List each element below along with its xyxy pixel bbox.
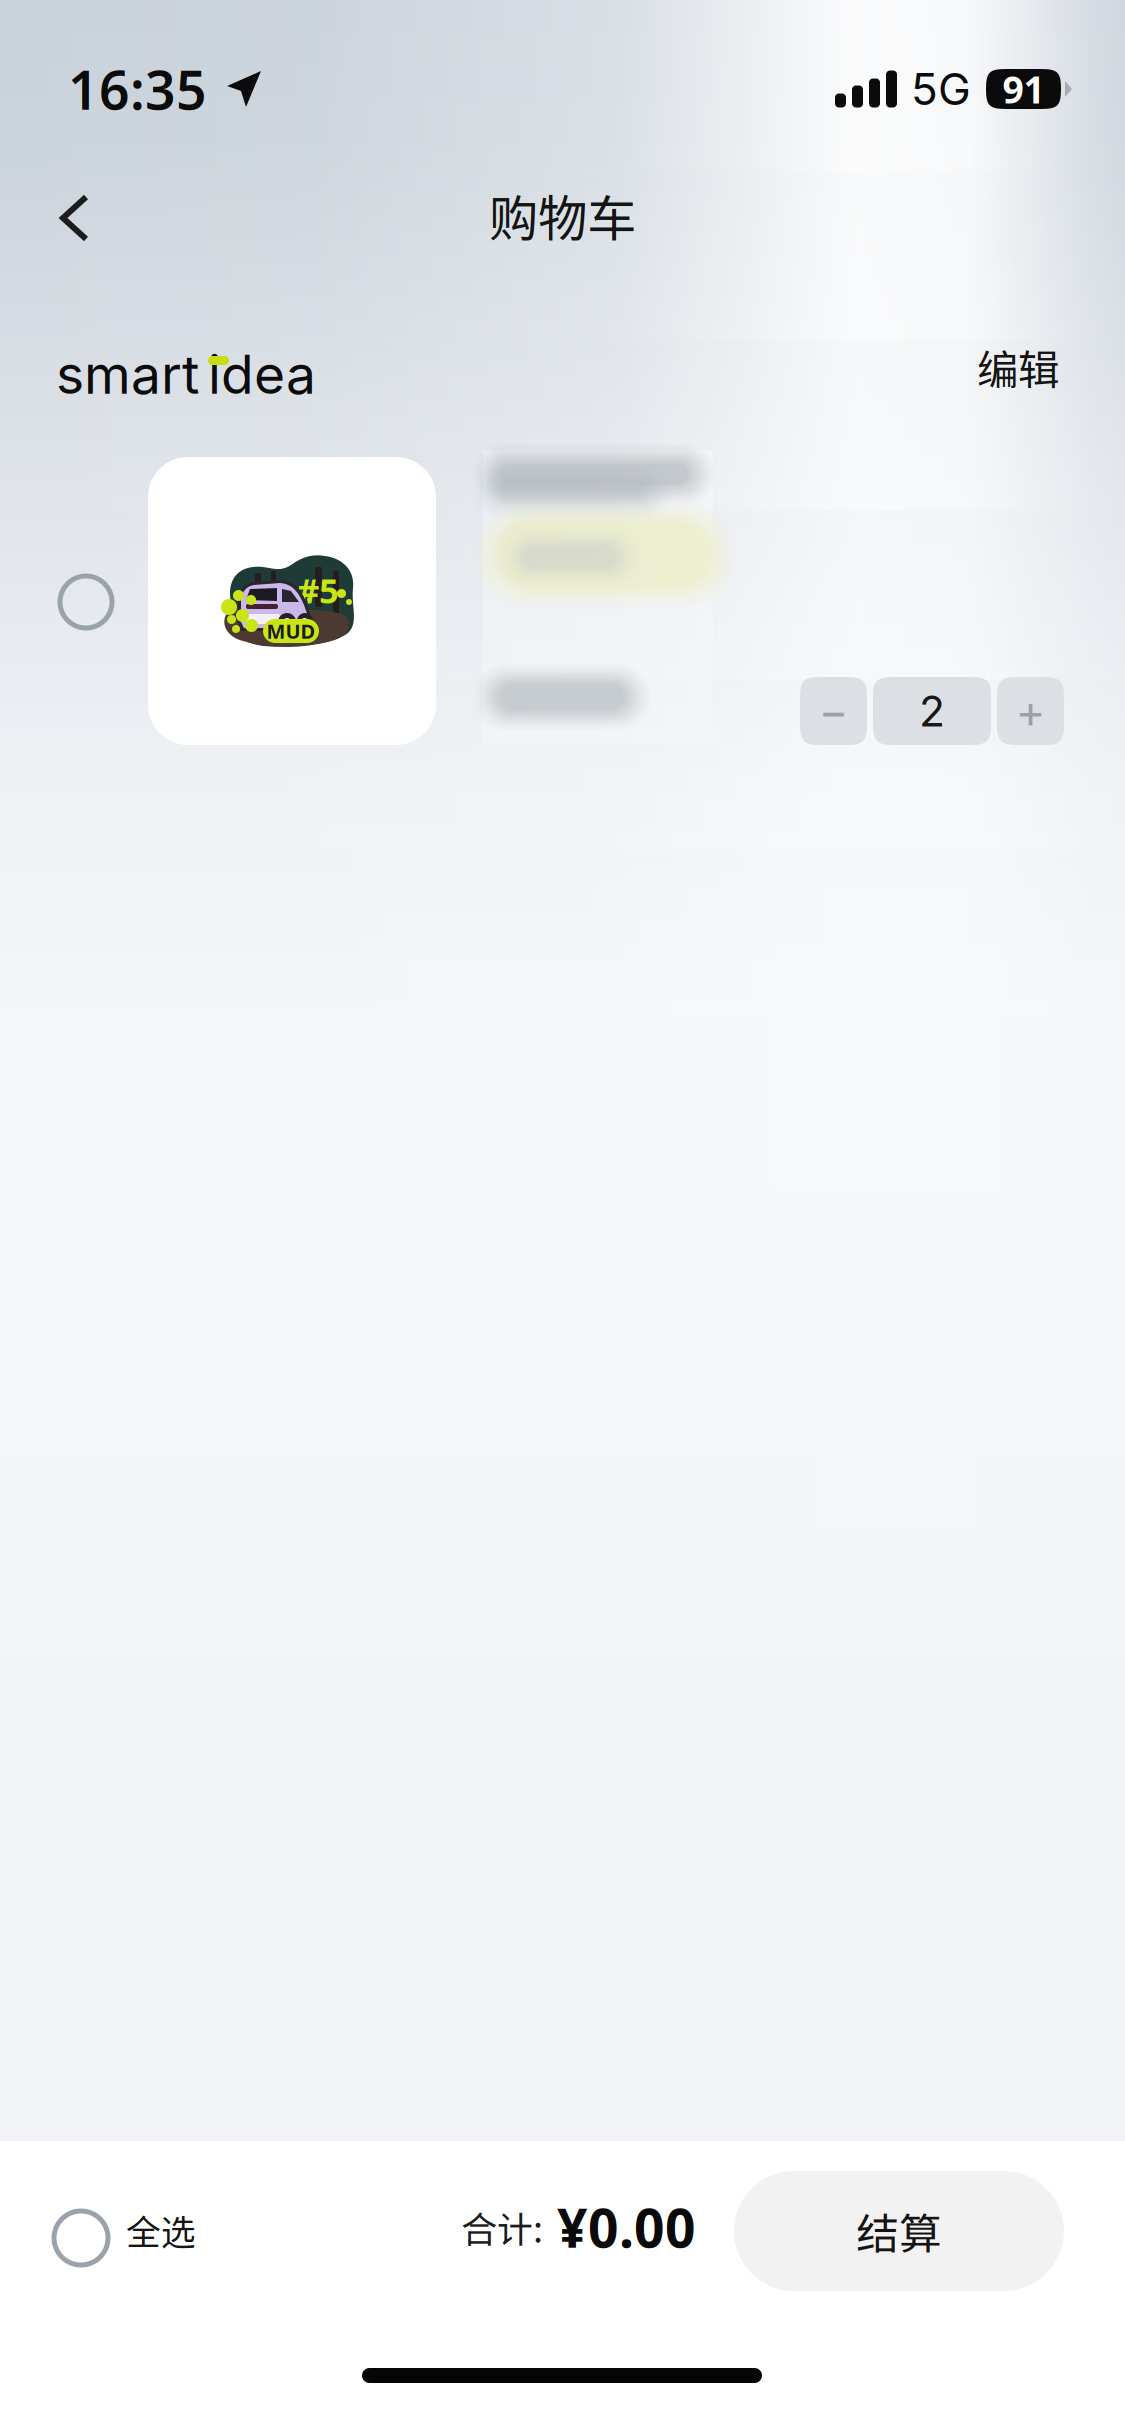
staticText: 购物车 bbox=[489, 179, 636, 251]
staticText: 16:35 bbox=[68, 54, 207, 124]
staticText: + bbox=[1015, 684, 1045, 738]
button[interactable]: 增加数量 bbox=[997, 677, 1064, 745]
button[interactable]: 选择商品 bbox=[30, 546, 142, 658]
staticText: ¥0.00 bbox=[557, 2192, 696, 2262]
staticText: 合计: bbox=[461, 2201, 543, 2253]
staticText: 2 bbox=[919, 685, 945, 737]
staticText: idea bbox=[208, 342, 316, 406]
staticText: #5 bbox=[297, 567, 339, 613]
staticText: 结算 bbox=[856, 2200, 942, 2262]
staticText: smart bbox=[56, 342, 199, 406]
staticText: 5G bbox=[911, 62, 971, 116]
staticText: 编辑 bbox=[977, 337, 1059, 397]
button[interactable]: 减少数量 bbox=[800, 677, 867, 745]
button[interactable]: 结算 bbox=[734, 2171, 1064, 2291]
button[interactable]: 全选 bbox=[0, 2183, 222, 2293]
button[interactable]: 编辑 bbox=[909, 322, 1059, 412]
staticText: 91 bbox=[1002, 64, 1044, 114]
staticText: MUD bbox=[266, 618, 315, 644]
staticText: 全选 bbox=[126, 2205, 196, 2255]
button[interactable]: 数量 bbox=[873, 677, 991, 745]
button[interactable]: 返回 bbox=[18, 162, 130, 274]
staticText: − bbox=[818, 684, 848, 738]
